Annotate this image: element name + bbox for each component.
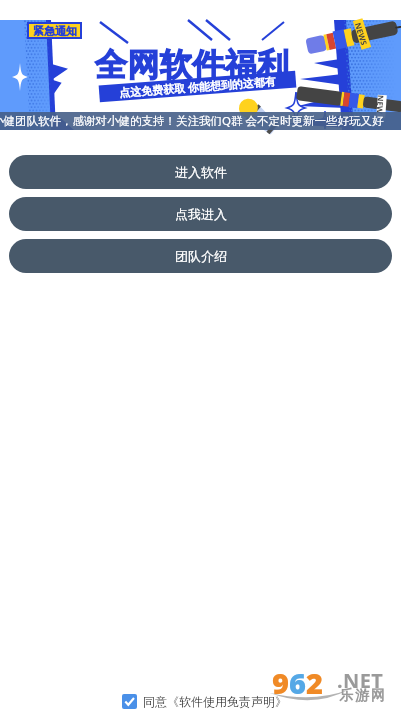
staticText: 同意《软件使用免责声明》	[143, 694, 287, 709]
staticText: 乐游网	[338, 687, 386, 705]
staticText: 进入软件	[175, 164, 227, 180]
staticText: 点我进入	[175, 206, 227, 222]
staticText: 点这免费获取 你能想到的这都有	[119, 73, 276, 100]
staticText: NEWS	[354, 21, 370, 47]
staticText: 9	[272, 663, 289, 702]
button[interactable]: 同意《软件使用免责声明》	[122, 694, 287, 709]
staticText: 全网软件福利	[95, 45, 290, 85]
staticText: 团队介绍	[175, 248, 227, 264]
staticText: 小健团队软件，感谢对小健的支持！关注我们Q群 会不定时更新一些好玩又好用	[0, 113, 393, 129]
staticText: 2	[306, 663, 323, 702]
button[interactable]: 团队介绍	[9, 239, 392, 273]
staticText: 紧急通知	[33, 24, 77, 37]
button[interactable]: 进入软件	[9, 155, 392, 189]
staticText: NEWS	[376, 95, 387, 118]
staticText: 全网软件福利	[95, 45, 290, 85]
button[interactable]: 点我进入	[9, 197, 392, 231]
staticText: 6	[289, 663, 306, 702]
staticText: .NET	[337, 667, 384, 694]
